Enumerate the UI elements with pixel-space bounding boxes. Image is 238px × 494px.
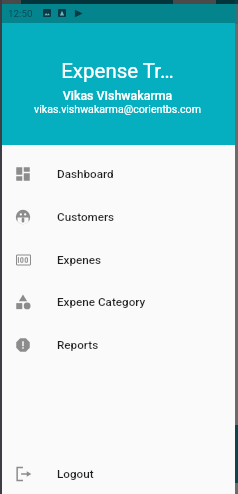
button[interactable]: Customers bbox=[0, 195, 235, 238]
staticText: 12:50 bbox=[8, 8, 33, 19]
staticText: Expene Category bbox=[57, 295, 146, 309]
button[interactable]: Expenes bbox=[0, 238, 235, 281]
staticText: Logout bbox=[57, 467, 94, 481]
staticText: vikas.vishwakarma@corientbs.com bbox=[0, 103, 235, 115]
button[interactable]: Dashboard bbox=[0, 152, 235, 195]
button[interactable]: Logout bbox=[0, 452, 235, 494]
staticText: Dashboard bbox=[57, 167, 114, 181]
button[interactable]: Expene Category bbox=[0, 280, 235, 323]
button[interactable]: Reports bbox=[0, 323, 235, 366]
staticText: Vikas VIshwakarma bbox=[0, 88, 235, 103]
staticText: Customers bbox=[57, 210, 115, 224]
staticText: Reports bbox=[57, 338, 99, 352]
staticText: Expenes bbox=[57, 253, 102, 267]
staticText: Expense Tr… bbox=[0, 59, 235, 83]
